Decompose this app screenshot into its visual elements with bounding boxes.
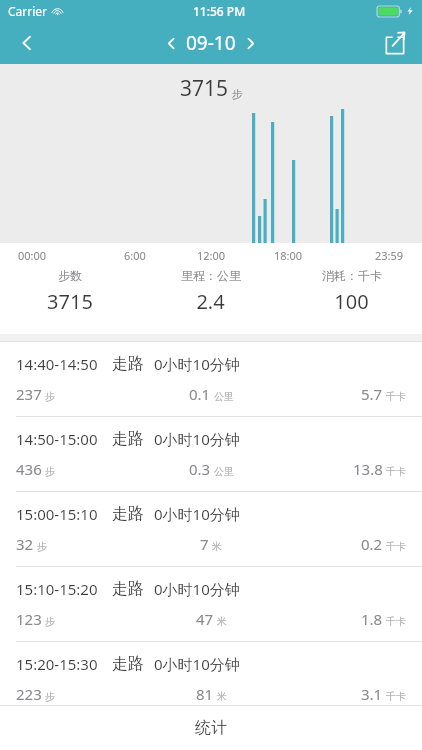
staticText: 11:56 PM — [193, 3, 246, 19]
staticText: 千卡 — [386, 615, 406, 628]
staticText: 3715 — [180, 74, 229, 103]
staticText: 100 — [334, 288, 369, 315]
staticText: 步 — [45, 465, 55, 478]
staticText: 13.8 — [353, 459, 383, 479]
staticText: 走路 — [112, 579, 144, 599]
staticText: 千卡 — [386, 540, 406, 553]
staticText: 1.8 — [361, 609, 383, 629]
staticText: 步 — [45, 615, 55, 628]
staticText: 7 — [200, 534, 209, 554]
staticText: 0小时10分钟 — [154, 429, 240, 449]
staticText: 6:00 — [124, 248, 146, 263]
staticText: 23:59 — [375, 248, 404, 263]
button[interactable]: 14:40-14:50 — [0, 342, 422, 417]
staticText: 237 — [16, 384, 42, 404]
staticText: 0小时10分钟 — [154, 504, 240, 524]
staticText: 0.2 — [361, 534, 383, 554]
staticText: 走路 — [112, 429, 144, 449]
staticText: 5.7 — [361, 384, 383, 404]
button[interactable]: 15:20-15:30 — [0, 642, 422, 717]
staticText: 0小时10分钟 — [154, 579, 240, 599]
staticText: 公里 — [214, 465, 234, 478]
staticText: 米 — [212, 540, 222, 553]
button[interactable]: 15:00-15:10 — [0, 492, 422, 567]
staticText: Carrier — [8, 3, 48, 19]
button[interactable]: 消耗：千卡 — [281, 268, 422, 315]
staticText: 09-10 — [186, 30, 236, 56]
staticText: 2.4 — [196, 288, 225, 315]
button[interactable]: 15:10-15:20 — [0, 567, 422, 642]
staticText: 00:00 — [18, 248, 47, 263]
staticText: 千卡 — [386, 690, 406, 703]
staticText: 步 — [37, 540, 47, 553]
staticText: 15:20-15:30 — [16, 654, 98, 674]
staticText: 千卡 — [386, 465, 406, 478]
staticText: 0.3 — [189, 459, 211, 479]
button[interactable]: 步数 — [0, 268, 140, 315]
button[interactable]: 统计 — [0, 706, 422, 750]
staticText: 步数 — [58, 268, 82, 283]
staticText: 123 — [16, 609, 42, 629]
button[interactable]: 09-10 — [164, 30, 258, 56]
staticText: 千卡 — [386, 390, 406, 403]
staticText: 公里 — [214, 390, 234, 403]
staticText: 米 — [217, 615, 227, 628]
staticText: 14:40-14:50 — [16, 354, 98, 374]
staticText: 0小时10分钟 — [154, 729, 240, 749]
staticText: 32 — [16, 534, 34, 554]
staticText: 436 — [16, 459, 42, 479]
staticText: 15:10-15:20 — [16, 579, 98, 599]
button[interactable]: Share — [368, 22, 422, 64]
staticText: 步 — [232, 87, 243, 101]
button[interactable]: Back — [0, 22, 54, 64]
staticText: 3.1 — [361, 684, 383, 704]
staticText: 15:00-15:10 — [16, 504, 98, 524]
staticText: 统计 — [195, 718, 227, 738]
staticText: 12:00 — [197, 248, 226, 263]
staticText: 0小时10分钟 — [154, 654, 240, 674]
button[interactable]: 15:30-15:40 — [0, 717, 422, 749]
staticText: 18:00 — [274, 248, 303, 263]
staticText: 消耗：千卡 — [322, 268, 382, 283]
staticText: 步 — [45, 390, 55, 403]
staticText: 步 — [45, 690, 55, 703]
staticText: 47 — [196, 609, 214, 629]
staticText: 走路 — [112, 504, 144, 524]
staticText: 81 — [196, 684, 214, 704]
button[interactable]: 14:50-15:00 — [0, 417, 422, 492]
staticText: 走路 — [112, 354, 144, 374]
staticText: 0.1 — [189, 384, 211, 404]
button[interactable]: 里程：公里 — [140, 268, 281, 315]
staticText: 0小时10分钟 — [154, 354, 240, 374]
staticText: 米 — [217, 690, 227, 703]
staticText: 14:50-15:00 — [16, 429, 98, 449]
staticText: 3715 — [47, 288, 93, 315]
staticText: 里程：公里 — [181, 268, 241, 283]
staticText: 223 — [16, 684, 42, 704]
staticText: 走路 — [112, 654, 144, 674]
